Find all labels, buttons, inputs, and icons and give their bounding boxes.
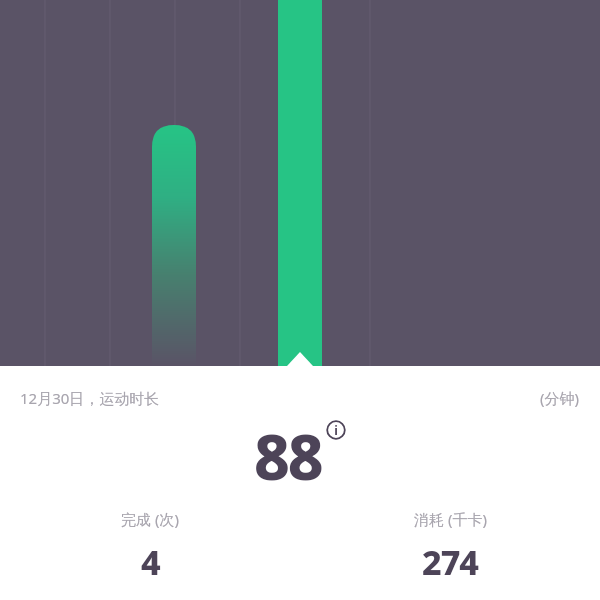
button[interactable]: 88 (254, 414, 346, 498)
staticText: 4 (141, 539, 160, 585)
staticText: 完成 (次) (121, 509, 179, 529)
staticText: 88 (254, 414, 322, 498)
staticText: i (334, 422, 338, 438)
staticText: 274 (422, 539, 478, 585)
button[interactable]: Info (326, 420, 346, 440)
staticText: 12月30日，运动时长 (20, 388, 160, 408)
button[interactable] (0, 0, 600, 366)
button[interactable]: 完成 (次) (0, 503, 300, 585)
staticText: (分钟) (540, 388, 580, 408)
button[interactable]: 消耗 (千卡) (300, 503, 600, 585)
staticText: 消耗 (千卡) (414, 509, 487, 529)
